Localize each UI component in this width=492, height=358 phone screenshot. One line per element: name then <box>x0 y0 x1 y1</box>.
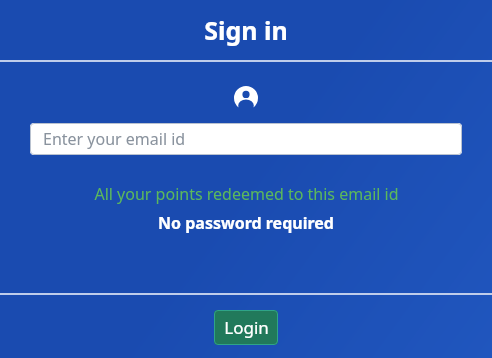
staticText: Sign in <box>204 13 288 47</box>
button[interactable]: Login <box>214 310 278 345</box>
staticText: Login <box>224 316 269 339</box>
staticText: Enter your email id <box>43 128 186 150</box>
button[interactable]: Enter your email id <box>30 123 462 155</box>
staticText: All your points redeemed to this email i… <box>94 183 399 205</box>
button[interactable]: Account <box>234 86 258 110</box>
staticText: No password required <box>158 212 334 234</box>
